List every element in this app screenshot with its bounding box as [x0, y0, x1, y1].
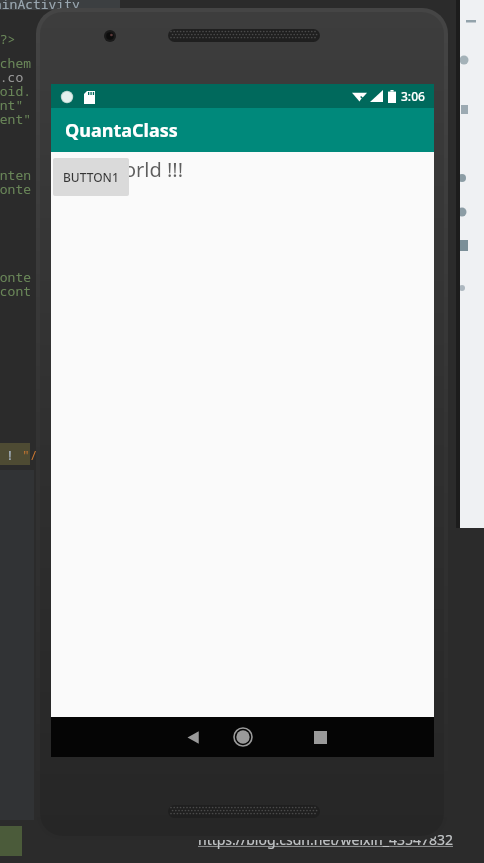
button[interactable]: BUTTON1 [53, 158, 129, 196]
button[interactable]: Recent apps [294, 717, 346, 757]
staticText: schem [0, 54, 32, 72]
staticText: rent" [0, 110, 32, 128]
staticText: Hello World !!! [52, 156, 184, 183]
staticText: ainActivity [0, 0, 80, 13]
staticText: _cont [0, 282, 32, 300]
button[interactable]: Back [167, 717, 219, 757]
staticText: BUTTON1 [63, 169, 119, 185]
staticText: ! [6, 446, 14, 464]
staticText: QuantaClass [65, 118, 178, 143]
staticText: conte [0, 180, 32, 198]
staticText: conte [0, 268, 32, 286]
staticText: 3:06 [401, 88, 425, 104]
staticText: ent" [0, 96, 24, 114]
staticText: '?> [0, 30, 16, 48]
staticText: onten [0, 166, 32, 184]
staticText: "/ [22, 446, 38, 464]
staticText: https://blog.csdn.net/weixin_43547832 [198, 830, 454, 849]
button[interactable]: Home [217, 717, 269, 757]
staticText: d.co [0, 68, 24, 86]
staticText: roid. [0, 82, 32, 100]
